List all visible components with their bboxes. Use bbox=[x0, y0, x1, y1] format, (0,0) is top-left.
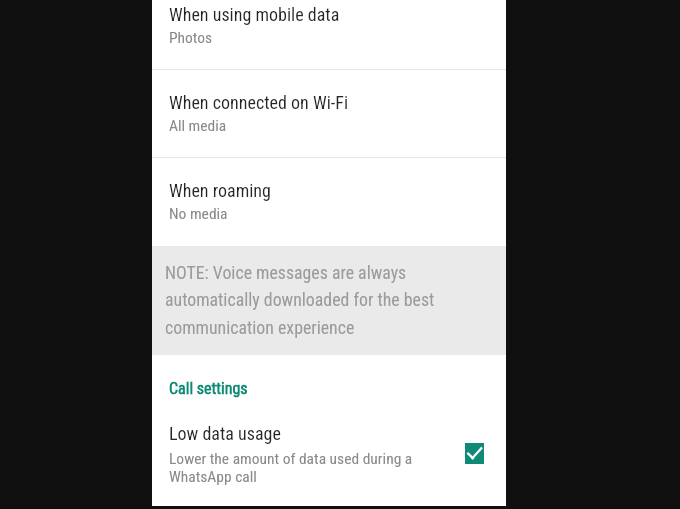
staticText: Lower the amount of data used during a W… bbox=[169, 450, 417, 486]
button[interactable]: When roaming bbox=[152, 158, 506, 246]
staticText: NOTE: Voice messages are always automati… bbox=[165, 262, 455, 339]
staticText: When connected on Wi-Fi bbox=[169, 92, 349, 113]
button[interactable]: When using mobile data bbox=[152, 0, 506, 69]
staticText: Low data usage bbox=[169, 423, 281, 444]
staticText: When using mobile data bbox=[169, 4, 340, 25]
staticText: All media bbox=[169, 117, 227, 135]
other: Low data usage, checked bbox=[465, 443, 484, 464]
staticText: No media bbox=[169, 205, 228, 223]
button[interactable]: When connected on Wi-Fi bbox=[152, 70, 506, 157]
staticText: Photos bbox=[169, 29, 213, 47]
staticText: When roaming bbox=[169, 180, 271, 201]
button[interactable]: Call settings bbox=[169, 379, 248, 398]
button[interactable]: Low data usage bbox=[152, 413, 506, 505]
